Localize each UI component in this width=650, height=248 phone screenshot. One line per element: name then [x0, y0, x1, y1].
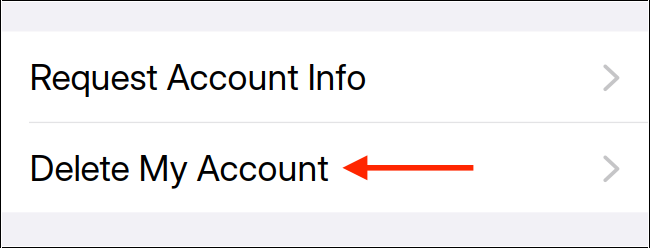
button[interactable]: Request Account Info: [0, 32, 650, 122]
staticText: Request Account Info: [29, 55, 366, 99]
button[interactable]: Delete My Account: [0, 123, 650, 212]
staticText: Delete My Account: [29, 146, 328, 190]
